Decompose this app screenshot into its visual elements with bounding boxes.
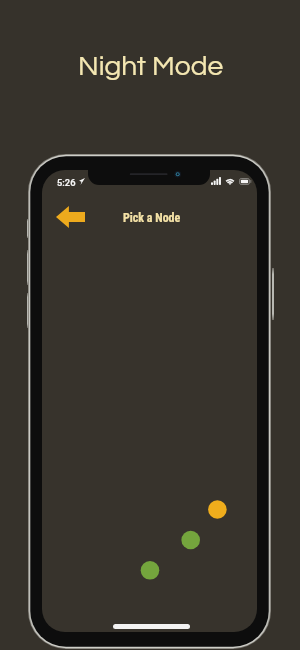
button[interactable]: Pick a Node	[112, 205, 192, 231]
staticText: 5:26	[57, 177, 76, 188]
button[interactable]: Back	[56, 203, 90, 231]
staticText: Night Mode	[78, 52, 224, 81]
staticText: Pick a Node	[123, 211, 181, 225]
